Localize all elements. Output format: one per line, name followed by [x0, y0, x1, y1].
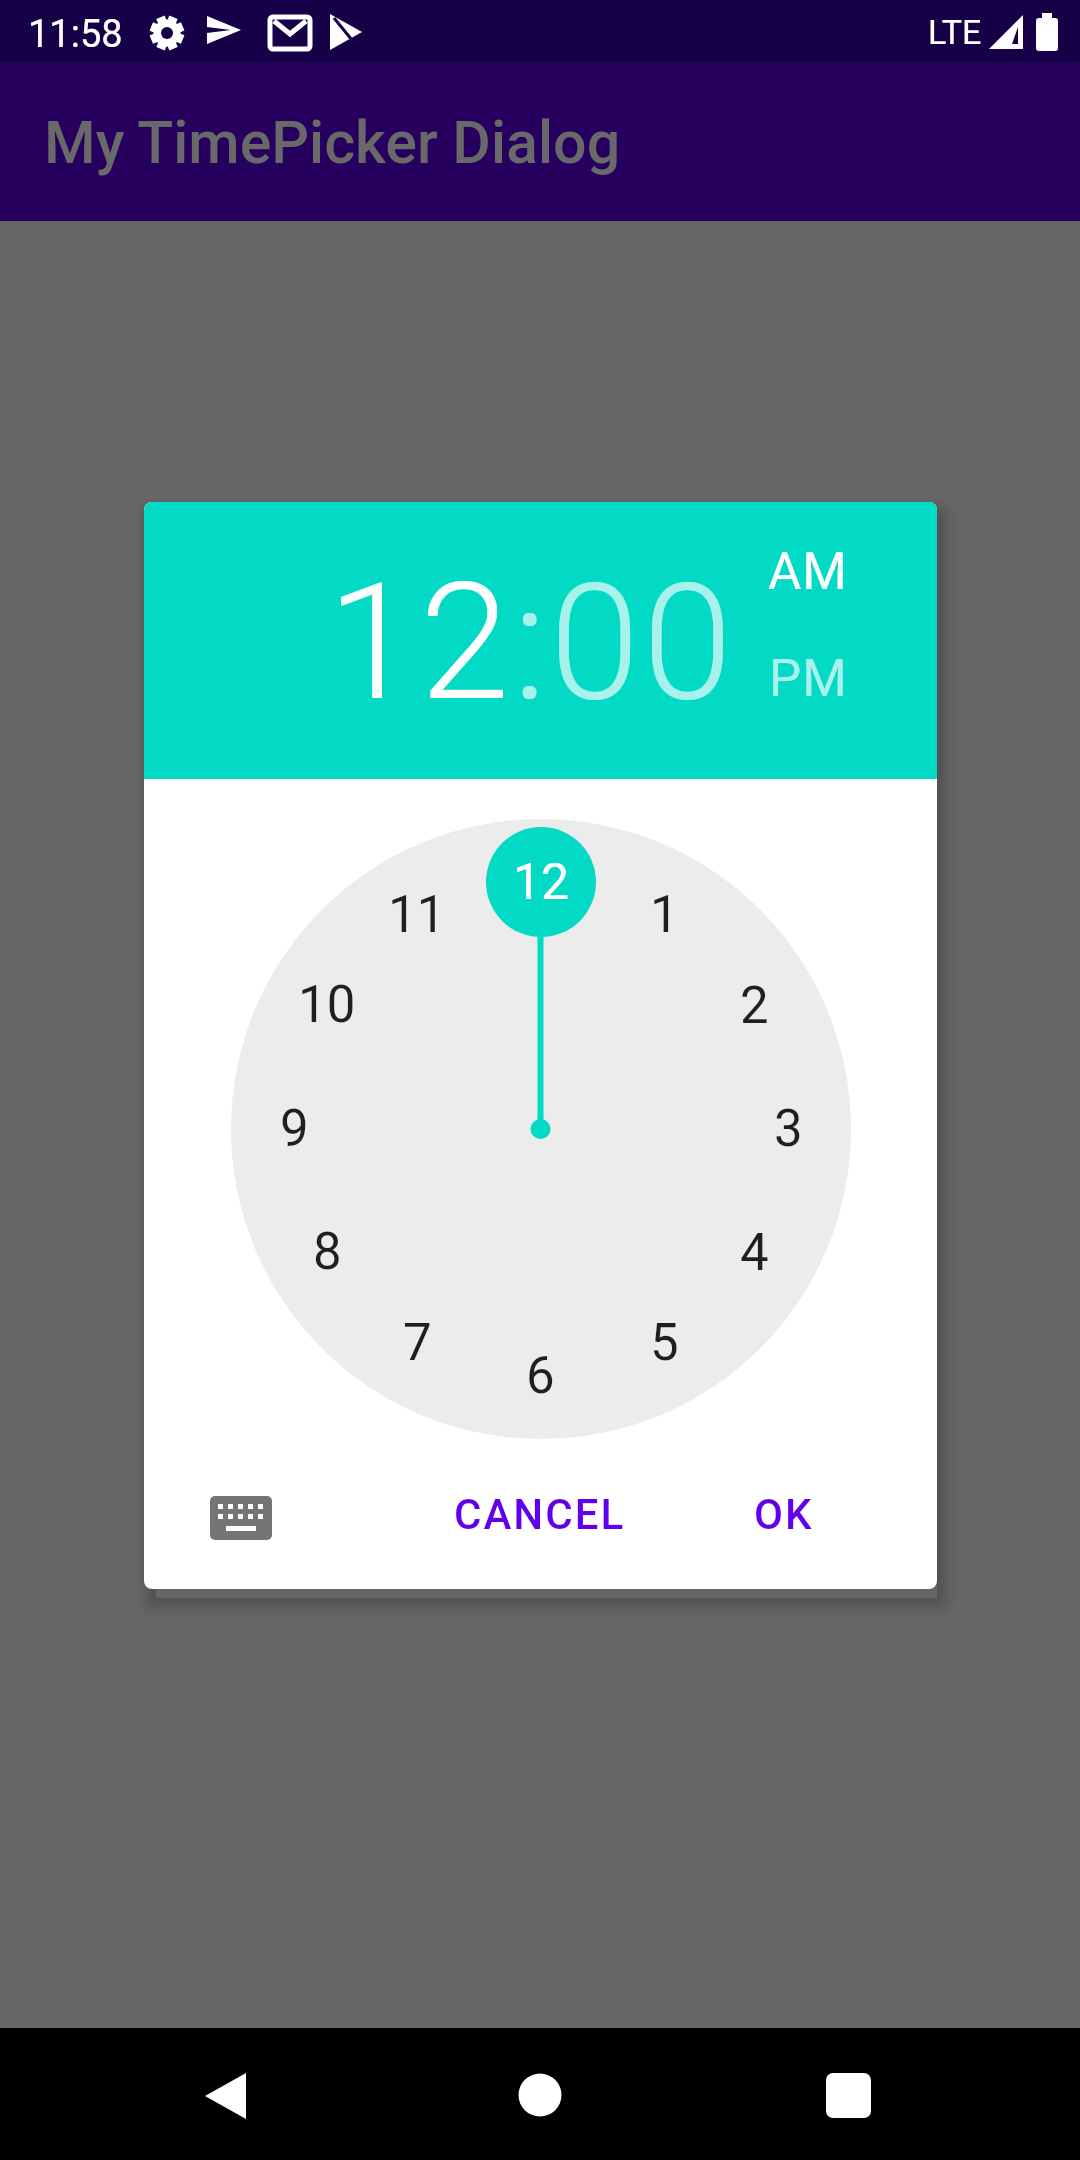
button[interactable]: 5 [619, 1298, 709, 1388]
staticText: 6 [526, 1346, 555, 1406]
button[interactable]: PM [753, 648, 863, 710]
button[interactable]: 6 [495, 1331, 585, 1421]
staticText: 7 [403, 1313, 432, 1373]
staticText: 12 [513, 853, 570, 912]
button[interactable]: 1 [619, 870, 709, 960]
button[interactable]: 9 [249, 1084, 339, 1174]
button[interactable] [808, 2056, 888, 2136]
staticText: 5 [650, 1313, 679, 1373]
staticText: 8 [313, 1222, 342, 1282]
staticText: 12:00 [327, 548, 736, 738]
staticText: 2 [740, 976, 769, 1036]
staticText: My TimePicker Dialog [44, 108, 621, 177]
button[interactable] [200, 1487, 282, 1549]
button[interactable]: 4 [709, 1208, 799, 1298]
staticText: 3 [774, 1099, 803, 1159]
staticText: LTE [928, 12, 982, 52]
button[interactable]: 7 [372, 1298, 462, 1388]
staticText: 11:58 [28, 12, 123, 57]
staticText: 1 [650, 885, 679, 945]
button[interactable]: 10 [282, 960, 372, 1050]
button[interactable]: 12 [486, 827, 596, 937]
staticText: 4 [740, 1223, 769, 1283]
button[interactable] [187, 2056, 267, 2136]
staticText: PM [769, 649, 848, 709]
staticText: 9 [280, 1099, 309, 1159]
button[interactable]: AM [753, 541, 863, 603]
button[interactable]: 3 [743, 1084, 833, 1174]
button[interactable]: CANCEL [400, 1476, 680, 1552]
button[interactable]: OK [704, 1476, 864, 1552]
staticText: AM [768, 542, 848, 602]
button[interactable] [500, 2056, 580, 2136]
staticText: OK [754, 1490, 814, 1539]
button[interactable]: 2 [709, 961, 799, 1051]
staticText: CANCEL [454, 1490, 626, 1539]
staticText: 10 [298, 975, 356, 1035]
staticText: 11 [388, 885, 446, 945]
button[interactable]: 8 [282, 1207, 372, 1297]
button[interactable]: 11 [372, 870, 462, 960]
